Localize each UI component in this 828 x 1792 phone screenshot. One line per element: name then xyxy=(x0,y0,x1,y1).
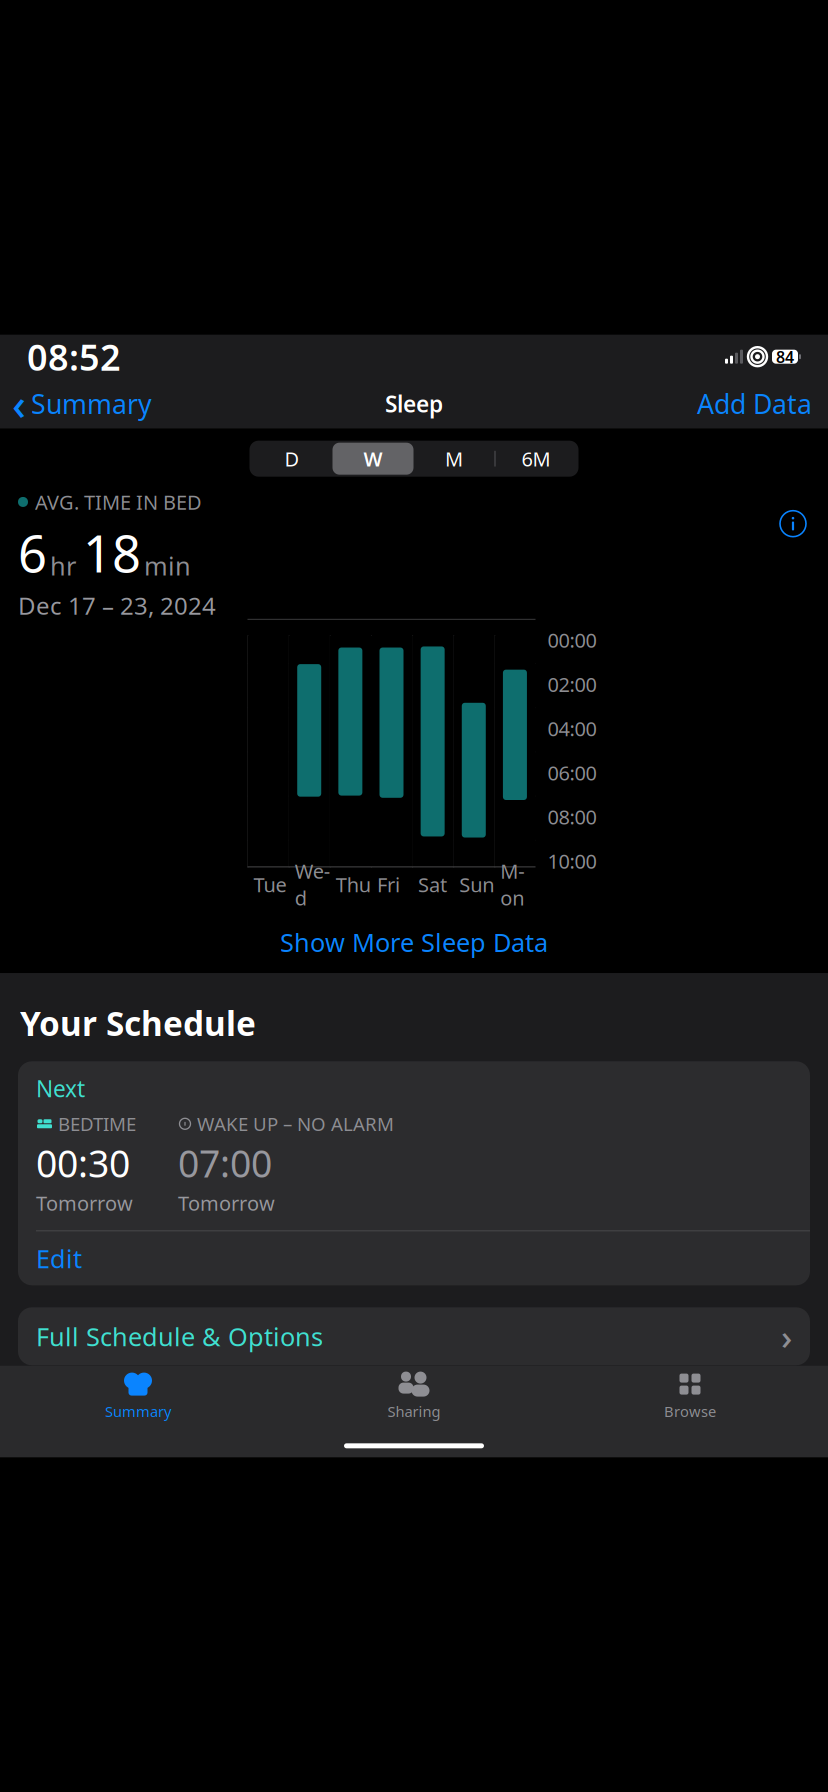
staticText: 04:00 xyxy=(547,715,596,742)
button[interactable]: 6M xyxy=(495,443,576,475)
staticText: Your Schedule xyxy=(20,1001,256,1045)
staticText: 10:00 xyxy=(547,848,596,874)
button[interactable]: D xyxy=(251,443,332,475)
button[interactable]: W xyxy=(332,443,413,475)
staticText: 18 xyxy=(83,519,141,586)
staticText: 06:00 xyxy=(547,759,596,786)
staticText: Add Data xyxy=(697,386,812,421)
button[interactable]: Summary xyxy=(0,1364,276,1421)
staticText: Browse xyxy=(664,1402,716,1421)
staticText: hr xyxy=(50,549,76,582)
staticText: Show More Sleep Data xyxy=(280,925,548,959)
staticText: BEDTIME xyxy=(58,1111,136,1136)
staticText: Tomorrow xyxy=(178,1190,275,1216)
staticText: WAKE UP – NO ALARM xyxy=(197,1111,394,1136)
button[interactable]: Show More Sleep Data xyxy=(0,911,828,973)
button[interactable]: ‹ xyxy=(0,371,152,436)
staticText: Summary xyxy=(31,386,152,421)
staticText: min xyxy=(144,549,191,582)
staticText: Fri xyxy=(377,871,400,898)
staticText: 6 xyxy=(18,519,47,586)
staticText: › xyxy=(781,1313,792,1359)
staticText: Mon xyxy=(500,858,524,911)
staticText: 08:00 xyxy=(547,804,596,830)
button[interactable]: Full Schedule & Options xyxy=(18,1307,810,1365)
staticText: M xyxy=(445,445,463,472)
staticText: D xyxy=(284,445,299,472)
staticText: Tue xyxy=(253,871,286,898)
staticText: 00:00 xyxy=(547,627,596,653)
staticText: Sun xyxy=(459,871,494,898)
staticText: Next xyxy=(36,1073,85,1103)
button[interactable]: Edit xyxy=(18,1231,810,1285)
staticText: Sharing xyxy=(387,1402,440,1421)
staticText: Edit xyxy=(36,1241,82,1275)
staticText: 08:52 xyxy=(27,333,121,381)
staticText: Full Schedule & Options xyxy=(36,1319,323,1353)
staticText: Summary xyxy=(105,1402,171,1421)
staticText: Tomorrow xyxy=(36,1190,133,1216)
staticText: 6M xyxy=(521,445,550,472)
staticText: 00:30 xyxy=(36,1138,130,1188)
staticText: Dec 17 – 23, 2024 xyxy=(18,589,216,621)
staticText: Sat xyxy=(418,871,447,898)
staticText: Wed xyxy=(295,858,330,911)
button[interactable]: M xyxy=(413,443,494,475)
staticText: Thu xyxy=(336,871,371,898)
staticText: AVG. TIME IN BED xyxy=(35,489,202,515)
staticText: Sleep xyxy=(385,389,443,419)
button[interactable]: About average time in bed xyxy=(776,507,810,541)
staticText: 84 xyxy=(776,346,794,367)
button[interactable]: Sharing xyxy=(276,1364,552,1421)
staticText: ‹ xyxy=(12,375,26,432)
button[interactable]: Add Data xyxy=(697,382,828,425)
staticText: 02:00 xyxy=(547,671,596,698)
staticText: W xyxy=(363,445,382,472)
staticText: 07:00 xyxy=(178,1138,272,1188)
button[interactable]: Browse xyxy=(552,1364,828,1421)
